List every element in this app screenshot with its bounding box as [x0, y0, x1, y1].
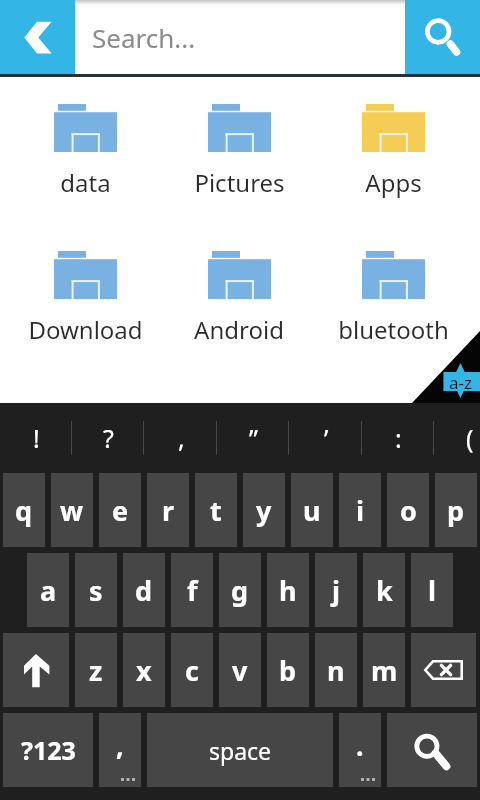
button[interactable]: p: [435, 473, 477, 547]
button[interactable]: d: [123, 553, 165, 627]
staticText: p: [447, 492, 465, 529]
button[interactable]: !: [0, 403, 72, 470]
button[interactable]: ,: [145, 403, 217, 470]
staticText: r: [162, 492, 175, 529]
staticText: v: [232, 652, 248, 689]
button[interactable]: [3, 633, 69, 707]
staticText: Download: [28, 313, 143, 346]
button[interactable]: g: [219, 553, 261, 627]
button[interactable]: u: [291, 473, 333, 547]
staticText: d: [135, 572, 153, 609]
staticText: o: [400, 492, 417, 529]
staticText: l: [428, 572, 437, 609]
button[interactable]: Download: [9, 245, 161, 349]
button[interactable]: r: [147, 473, 189, 547]
button[interactable]: k: [363, 553, 405, 627]
staticText: i: [356, 492, 365, 529]
button[interactable]: q: [3, 473, 45, 547]
staticText: b: [279, 652, 297, 689]
button[interactable]: c: [171, 633, 213, 707]
button[interactable]: e: [99, 473, 141, 547]
button[interactable]: Apps: [317, 98, 469, 202]
staticText: z: [89, 652, 103, 689]
staticText: Android: [194, 313, 284, 346]
staticText: data: [60, 166, 111, 199]
button[interactable]: z: [75, 633, 117, 707]
staticText: !: [33, 421, 40, 455]
staticText: ”: [249, 421, 258, 455]
staticText: ?123: [21, 733, 76, 767]
button[interactable]: o: [387, 473, 429, 547]
button[interactable]: Search: [405, 0, 480, 74]
staticText: m: [371, 652, 398, 689]
staticText: e: [112, 492, 129, 529]
button[interactable]: y: [243, 473, 285, 547]
button[interactable]: l: [411, 553, 453, 627]
staticText: ,: [178, 421, 185, 455]
button[interactable]: b: [267, 633, 309, 707]
button[interactable]: data: [9, 98, 161, 202]
button[interactable]: space: [147, 713, 333, 787]
button[interactable]: s: [75, 553, 117, 627]
staticText: y: [256, 492, 272, 529]
button[interactable]: n: [315, 633, 357, 707]
staticText: a: [40, 572, 57, 609]
button[interactable]: f: [171, 553, 213, 627]
staticText: a-z: [449, 371, 473, 394]
staticText: bluetooth: [338, 313, 449, 346]
button[interactable]: (: [434, 403, 480, 470]
staticText: t: [210, 492, 222, 529]
button[interactable]: j: [315, 553, 357, 627]
button[interactable]: m: [363, 633, 405, 707]
staticText: ?: [103, 421, 114, 455]
staticText: :: [395, 421, 402, 455]
staticText: n: [327, 652, 345, 689]
staticText: space: [209, 735, 272, 766]
staticText: k: [376, 572, 393, 609]
button[interactable]: ?123: [3, 713, 93, 787]
staticText: Apps: [365, 166, 422, 199]
staticText: f: [187, 572, 198, 609]
button[interactable]: w: [51, 473, 93, 547]
button[interactable]: bluetooth: [317, 245, 469, 349]
button[interactable]: v: [219, 633, 261, 707]
staticText: j: [332, 572, 341, 609]
staticText: w: [60, 492, 84, 529]
button[interactable]: Android: [163, 245, 315, 349]
button[interactable]: ’: [290, 403, 362, 470]
staticText: c: [185, 652, 199, 689]
button[interactable]: x: [123, 633, 165, 707]
button[interactable]: Sort a-z: [412, 331, 480, 403]
staticText: ’: [324, 421, 329, 455]
button[interactable]: Pictures: [163, 98, 315, 202]
staticText: h: [279, 572, 297, 609]
staticText: Search...: [92, 20, 196, 55]
button[interactable]: .: [339, 713, 381, 787]
button[interactable]: :: [362, 403, 434, 470]
button[interactable]: Search...: [75, 0, 405, 74]
button[interactable]: ”: [217, 403, 289, 470]
staticText: u: [303, 492, 321, 529]
button[interactable]: ?: [72, 403, 144, 470]
staticText: .: [356, 727, 364, 764]
button[interactable]: Back: [0, 0, 75, 74]
staticText: s: [89, 572, 103, 609]
button[interactable]: i: [339, 473, 381, 547]
staticText: g: [231, 572, 249, 609]
button[interactable]: h: [267, 553, 309, 627]
button[interactable]: ,: [99, 713, 141, 787]
button[interactable]: [387, 713, 477, 787]
button[interactable]: t: [195, 473, 237, 547]
staticText: x: [136, 652, 152, 689]
staticText: ,: [116, 727, 124, 764]
button[interactable]: [411, 633, 476, 707]
button[interactable]: a: [27, 553, 69, 627]
staticText: q: [15, 492, 33, 529]
staticText: Pictures: [194, 166, 285, 199]
staticText: (: [466, 421, 474, 455]
